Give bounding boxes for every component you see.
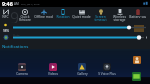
button[interactable]: Videos — [44, 63, 62, 76]
button[interactable]: Quiet mode — [72, 7, 91, 23]
staticText: Wireless storage — [113, 14, 126, 22]
staticText: NFC — [2, 14, 9, 18]
staticText: Rotation — [56, 14, 70, 18]
button[interactable]: Gallery — [73, 63, 91, 76]
staticText: Notifications — [2, 43, 29, 49]
staticText: Quick Restore — [19, 14, 31, 22]
staticText: Auto — [13, 34, 20, 38]
staticText: Gallery — [77, 72, 88, 76]
staticText: Camera — [16, 72, 28, 76]
button[interactable]: Rotation — [53, 7, 72, 23]
button[interactable]: Camera — [13, 63, 31, 76]
staticText: Screen timeout — [94, 14, 107, 22]
button[interactable]: Notifications — [0, 43, 150, 49]
staticText: 98% — [3, 29, 9, 33]
button[interactable]: Messaging — [132, 72, 141, 81]
button[interactable]: Offline mode — [34, 7, 53, 23]
button[interactable]: NFC — [0, 7, 15, 23]
button[interactable]: Contacts — [133, 56, 141, 64]
staticText: Videos — [48, 72, 58, 76]
button[interactable]: Wireless storage — [110, 7, 129, 23]
staticText: Battery saver — [129, 14, 146, 18]
staticText: 9:46 — [2, 0, 13, 7]
button[interactable]: S Voice Plus — [98, 63, 116, 76]
button[interactable]: Volume — [0, 33, 150, 43]
staticText: Offline mode — [34, 14, 53, 18]
button[interactable]: Screen timeout — [91, 7, 110, 23]
staticText: Quiet mode — [72, 14, 91, 18]
button[interactable]: Brightness — [0, 23, 150, 33]
staticText: 9 — [10, 7, 20, 23]
button[interactable]: Battery saver — [129, 7, 146, 23]
button[interactable]: Quick Restore — [15, 7, 34, 23]
staticText: Sun, Jan 4, 2018 — [21, 2, 40, 5]
staticText: AM — [14, 2, 19, 6]
staticText: S Voice Plus — [98, 72, 116, 76]
